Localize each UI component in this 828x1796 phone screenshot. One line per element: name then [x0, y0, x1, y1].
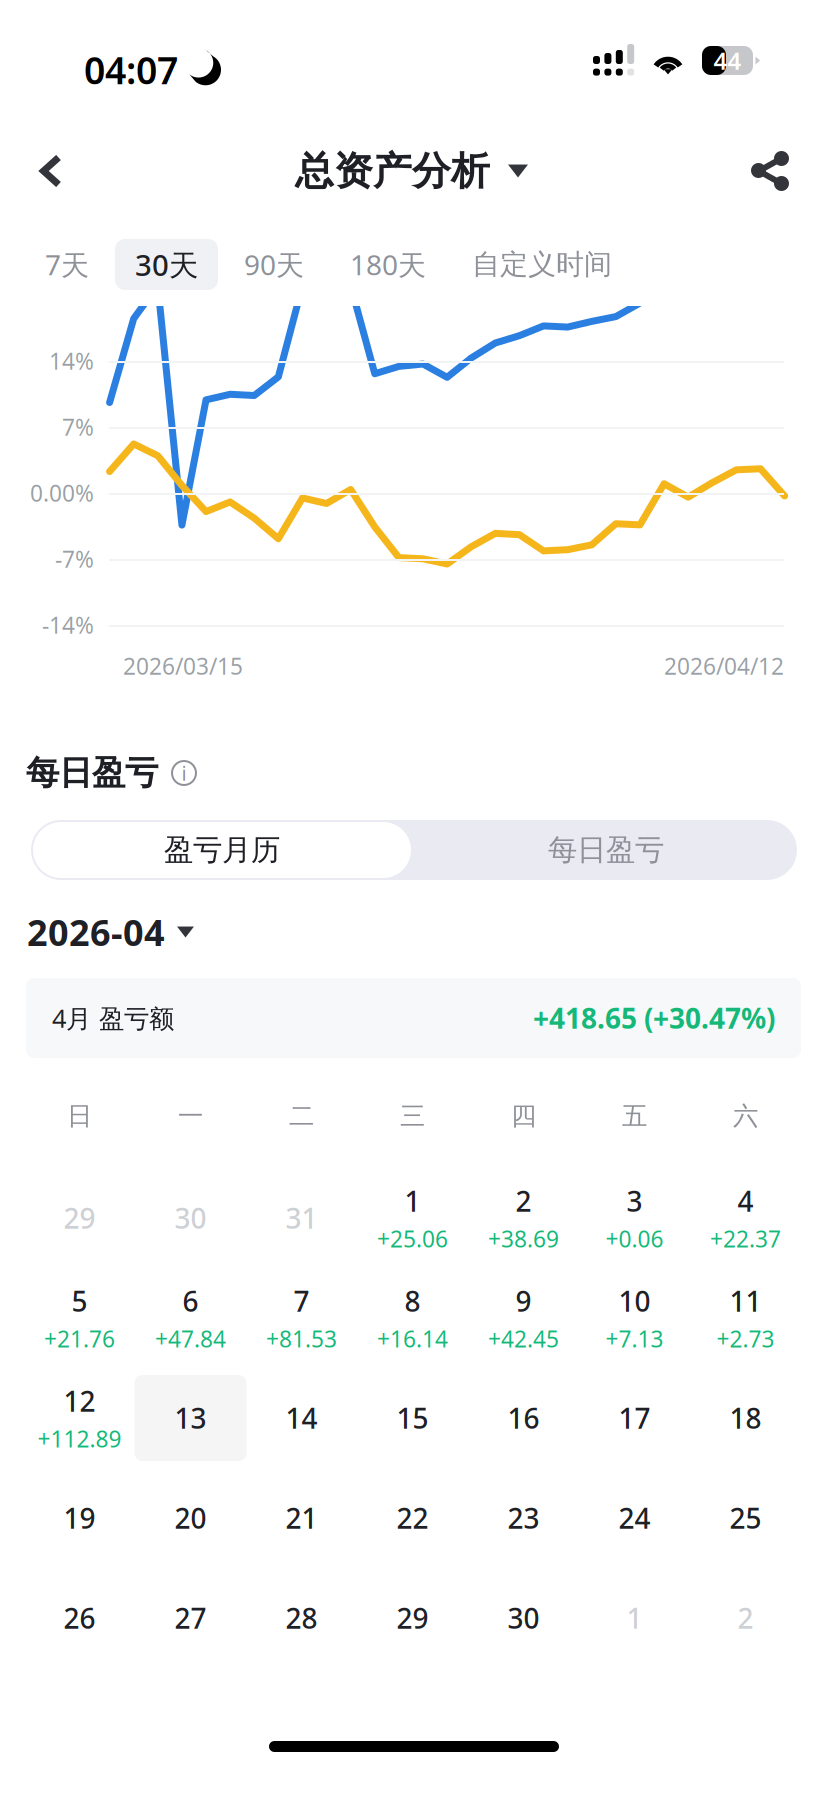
button[interactable]: 11 — [690, 1268, 801, 1368]
button[interactable]: 30天 — [115, 239, 218, 290]
staticText: 总资产分析 — [295, 147, 490, 195]
staticText: 自定义时间 — [472, 247, 612, 282]
button[interactable]: 1 — [357, 1168, 468, 1268]
button[interactable]: 每日盈亏 — [415, 820, 797, 880]
button[interactable]: 17 — [579, 1368, 690, 1468]
button[interactable]: 自定义时间 — [452, 239, 632, 290]
button[interactable]: 29 — [357, 1568, 468, 1668]
button[interactable]: 10 — [579, 1268, 690, 1368]
staticText: 六 — [733, 1100, 758, 1131]
staticText: -7% — [55, 544, 94, 574]
button[interactable]: 7天 — [25, 239, 109, 290]
staticText: 五 — [622, 1100, 647, 1131]
staticText: +7.13 — [605, 1323, 663, 1354]
staticText: -14% — [42, 610, 94, 640]
staticText: 10 — [618, 1282, 650, 1320]
staticText: +25.06 — [377, 1223, 448, 1254]
staticText: 25 — [729, 1499, 761, 1537]
button[interactable]: 14 — [246, 1368, 357, 1468]
button[interactable]: 9 — [468, 1268, 579, 1368]
staticText: 23 — [507, 1499, 539, 1537]
button[interactable]: 盈亏月历 — [33, 822, 411, 878]
button[interactable]: 28 — [246, 1568, 357, 1668]
staticText: +42.45 — [488, 1323, 559, 1354]
staticText: 1 — [404, 1182, 420, 1220]
staticText: 15 — [396, 1399, 428, 1437]
button[interactable]: 12 — [24, 1368, 135, 1468]
staticText: 4月 盈亏额 — [52, 1001, 174, 1035]
staticText: 日 — [67, 1100, 92, 1131]
staticText: i — [181, 760, 186, 786]
button[interactable]: 21 — [246, 1468, 357, 1568]
button[interactable]: 3 — [579, 1168, 690, 1268]
button[interactable]: 23 — [468, 1468, 579, 1568]
staticText: 四 — [511, 1100, 536, 1131]
staticText: 0.00% — [30, 478, 94, 508]
button[interactable]: 15 — [357, 1368, 468, 1468]
button[interactable]: 31 — [246, 1168, 357, 1268]
staticText: 30 — [507, 1599, 539, 1637]
staticText: +22.37 — [710, 1223, 781, 1254]
staticText: 28 — [285, 1599, 317, 1637]
staticText: 30 — [174, 1199, 206, 1237]
button[interactable]: Share — [735, 132, 805, 210]
button[interactable]: 18 — [690, 1368, 801, 1468]
button[interactable]: 2026-04 — [27, 908, 194, 956]
button[interactable]: 8 — [357, 1268, 468, 1368]
button[interactable]: 2 — [468, 1168, 579, 1268]
staticText: 27 — [174, 1599, 206, 1637]
button[interactable]: 24 — [579, 1468, 690, 1568]
button[interactable]: 6 — [135, 1268, 246, 1368]
staticText: 8 — [404, 1282, 420, 1320]
staticText: 5 — [71, 1282, 87, 1320]
staticText: 2 — [515, 1182, 531, 1220]
staticText: 盈亏月历 — [164, 832, 280, 868]
staticText: 二 — [289, 1100, 314, 1131]
button[interactable]: 180天 — [330, 239, 446, 290]
staticText: 2026-04 — [27, 908, 165, 956]
button[interactable]: 26 — [24, 1568, 135, 1668]
staticText: 14 — [285, 1399, 317, 1437]
button[interactable]: 2 — [690, 1568, 801, 1668]
staticText: 90天 — [244, 246, 304, 283]
button[interactable]: 20 — [135, 1468, 246, 1568]
button[interactable]: 30 — [135, 1168, 246, 1268]
staticText: 180天 — [350, 246, 426, 283]
staticText: +38.69 — [488, 1223, 559, 1254]
staticText: 4 — [737, 1182, 753, 1220]
button[interactable]: 25 — [690, 1468, 801, 1568]
staticText: 每日盈亏 — [26, 752, 158, 793]
button[interactable]: Back — [16, 132, 86, 210]
button[interactable]: 5 — [24, 1268, 135, 1368]
button[interactable]: Info — [172, 761, 196, 785]
staticText: +0.06 — [605, 1223, 663, 1254]
button[interactable]: 16 — [468, 1368, 579, 1468]
staticText: 14% — [49, 346, 94, 376]
button[interactable]: 22 — [357, 1468, 468, 1568]
staticText: +2.73 — [716, 1323, 774, 1354]
staticText: 12 — [63, 1382, 95, 1420]
staticText: 17 — [618, 1399, 650, 1437]
staticText: 1 — [626, 1599, 642, 1637]
staticText: 9 — [515, 1282, 531, 1320]
button[interactable]: 4 — [690, 1168, 801, 1268]
staticText: 30天 — [135, 245, 198, 284]
staticText: 19 — [63, 1499, 95, 1537]
button[interactable]: 29 — [24, 1168, 135, 1268]
button[interactable]: 90天 — [224, 239, 324, 290]
button[interactable]: 总资产分析 — [295, 132, 528, 210]
staticText: 29 — [63, 1199, 95, 1237]
staticText: 每日盈亏 — [548, 832, 664, 868]
button[interactable]: 27 — [135, 1568, 246, 1668]
button[interactable]: 30 — [468, 1568, 579, 1668]
staticText: 7% — [62, 412, 94, 442]
button[interactable]: 1 — [579, 1568, 690, 1668]
button[interactable]: 13 — [135, 1368, 246, 1468]
staticText: 20 — [174, 1499, 206, 1537]
button[interactable]: 7 — [246, 1268, 357, 1368]
staticText: 2 — [737, 1599, 753, 1637]
button[interactable]: 19 — [24, 1468, 135, 1568]
staticText: 16 — [507, 1399, 539, 1437]
staticText: 三 — [400, 1100, 425, 1131]
staticText: 22 — [396, 1499, 428, 1537]
